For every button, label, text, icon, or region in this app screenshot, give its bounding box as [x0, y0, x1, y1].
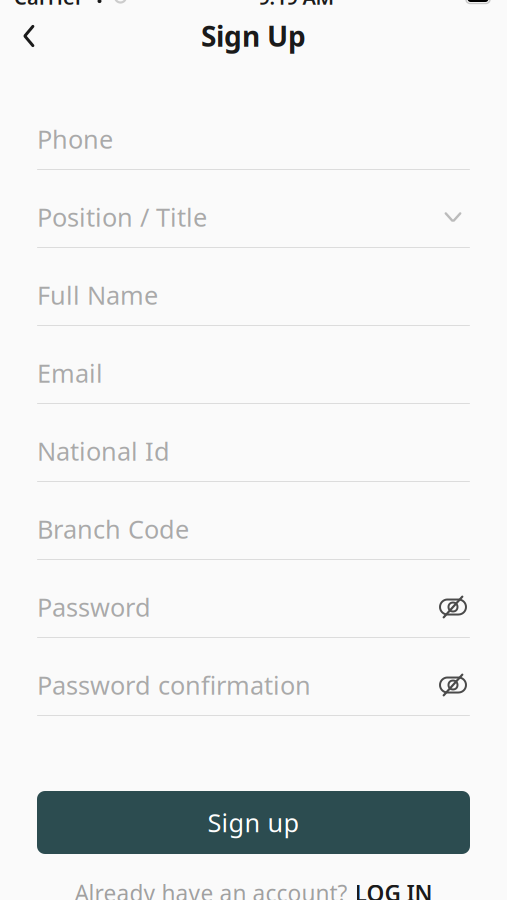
staticText: 9:19 AM [258, 0, 334, 10]
staticText: Already have an account? [74, 878, 347, 900]
staticText: National Id [37, 434, 170, 468]
staticText: Password confirmation [37, 668, 311, 702]
staticText: Sign up [207, 806, 299, 839]
staticText: Email [37, 356, 103, 390]
button[interactable]: Back [6, 13, 52, 59]
staticText: Carrier [14, 0, 84, 10]
staticText: Branch Code [37, 512, 189, 546]
staticText: Phone [37, 122, 113, 156]
button[interactable]: Sign up [37, 791, 470, 854]
button[interactable]: Show Password confirmation [436, 670, 470, 700]
button[interactable]: Show Password [436, 592, 470, 622]
staticText: Full Name [37, 278, 158, 312]
staticText: Position / Title [37, 200, 207, 234]
staticText: LOG IN [354, 878, 432, 900]
button[interactable]: Already have an account? [0, 878, 507, 900]
button[interactable]: Choose Position / Title [436, 202, 470, 232]
staticText: Sign Up [201, 17, 306, 55]
staticText: Password [37, 590, 151, 624]
